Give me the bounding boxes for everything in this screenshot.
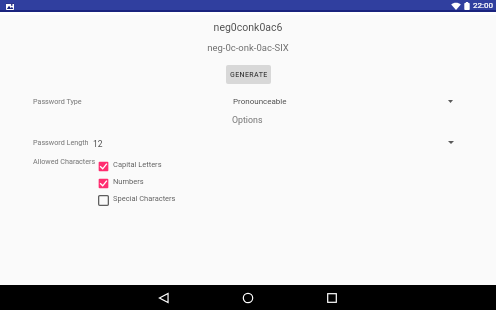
button[interactable]: GENERATE xyxy=(226,65,271,84)
staticText: Options xyxy=(232,115,263,125)
button[interactable]: Pronounceable xyxy=(226,92,462,113)
button[interactable]: Home xyxy=(241,291,255,305)
staticText: Numbers xyxy=(113,177,144,186)
button[interactable]: Capital Letters xyxy=(98,160,162,172)
button[interactable]: Back xyxy=(157,291,171,305)
staticText: 22:00 xyxy=(473,1,493,10)
staticText: Special Characters xyxy=(113,194,176,203)
staticText: Password Type xyxy=(33,97,82,105)
staticText: GENERATE xyxy=(230,71,268,79)
staticText: Pronounceable xyxy=(233,97,287,106)
button[interactable]: Special Characters xyxy=(98,194,176,206)
staticText: Capital Letters xyxy=(113,160,162,169)
button[interactable]: Recent apps xyxy=(325,291,339,305)
staticText: Password Length xyxy=(33,138,89,146)
staticText: 12 xyxy=(93,139,103,149)
button[interactable]: Options xyxy=(226,113,462,147)
staticText: neg0conk0ac6 xyxy=(0,21,496,33)
staticText: Allowed Characters xyxy=(33,157,96,165)
staticText: neg-0c-onk-0ac-SIX xyxy=(0,42,496,53)
button[interactable]: Numbers xyxy=(98,177,144,189)
